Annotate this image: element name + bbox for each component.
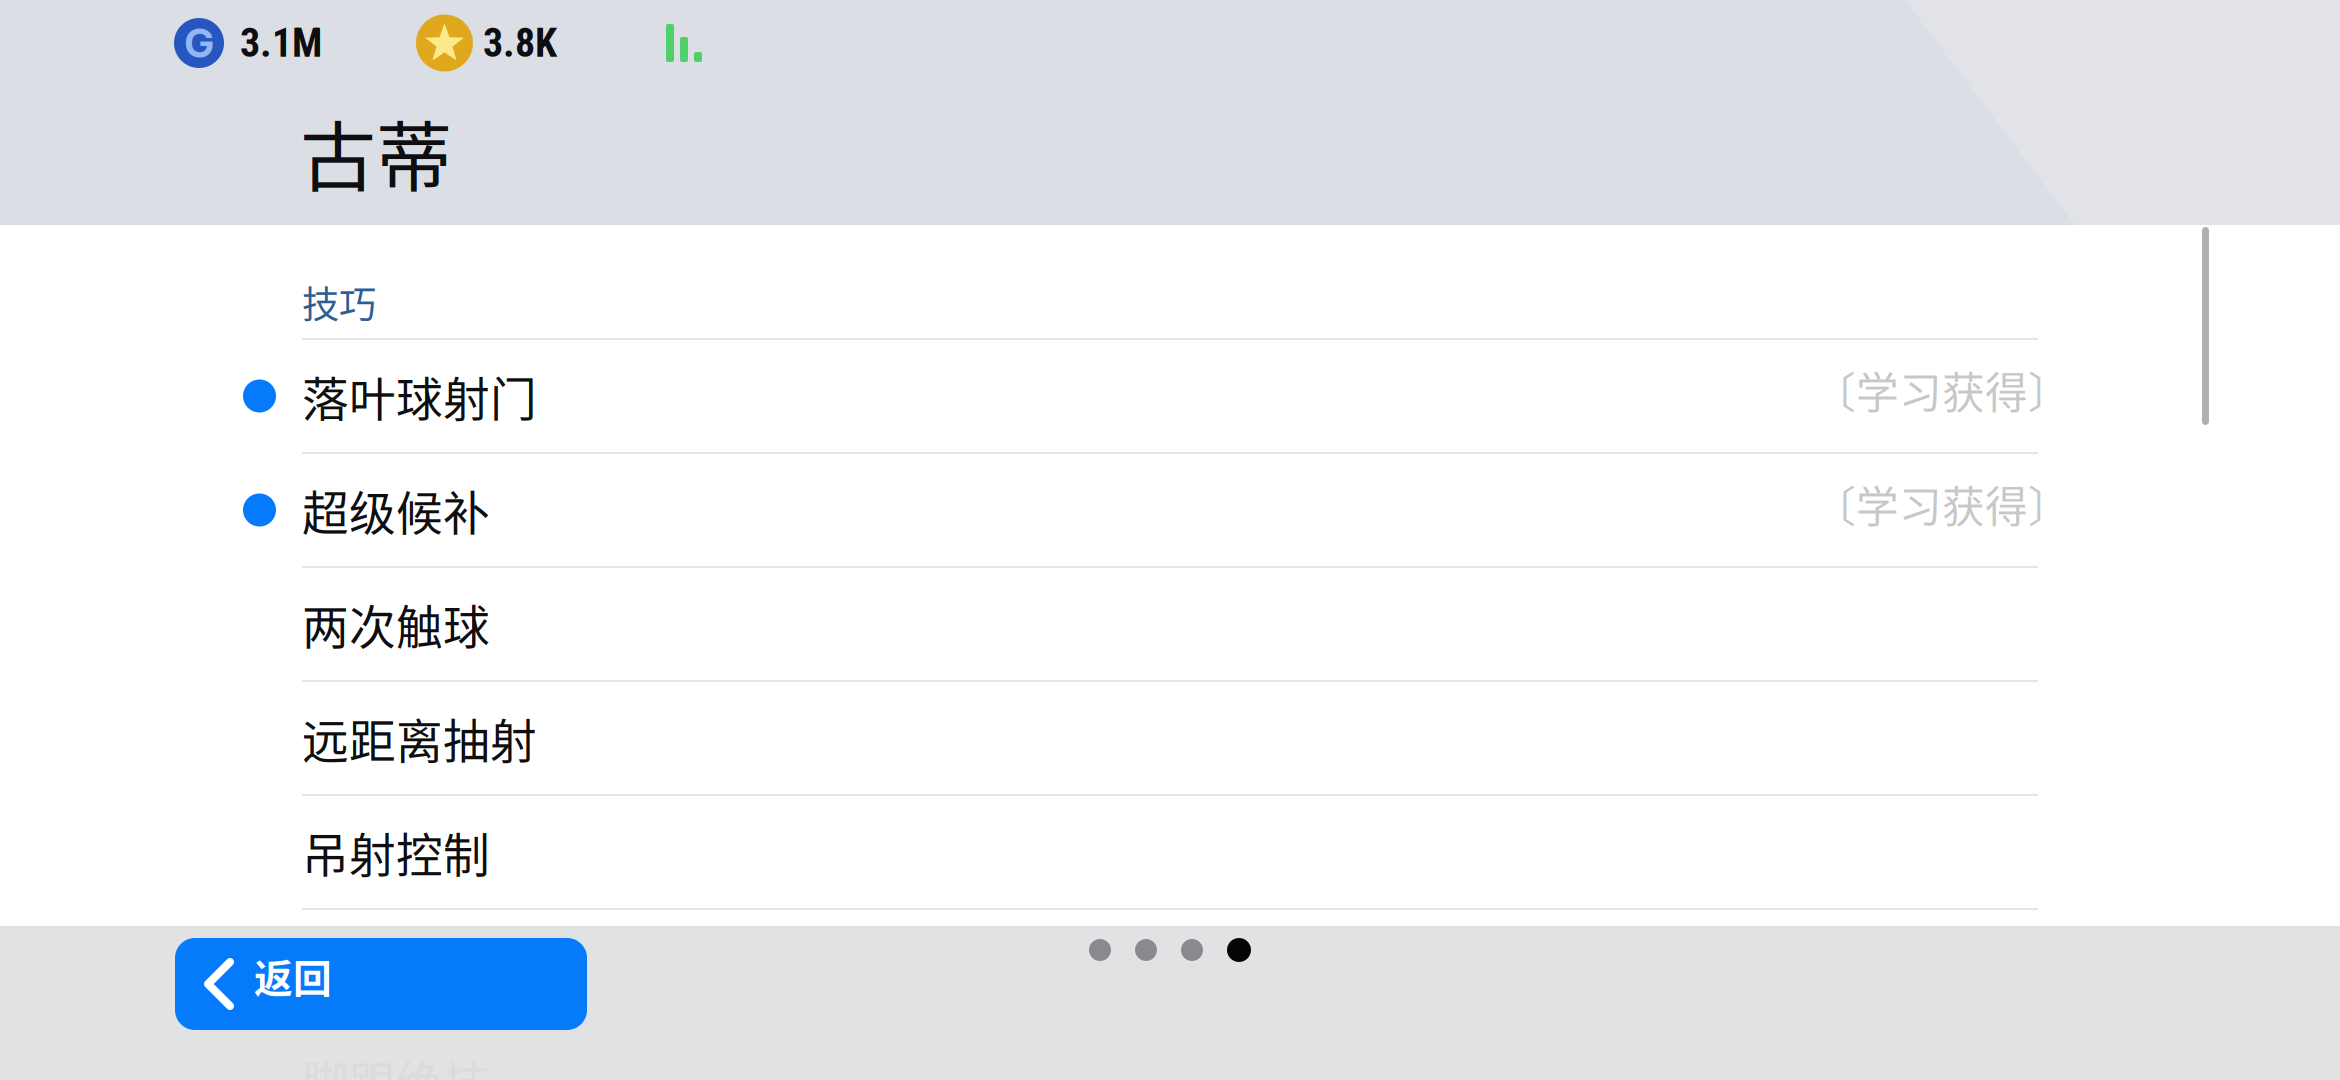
button[interactable]: 两次触球 [0,568,2340,680]
button[interactable]: 远距离抽射 [0,682,2340,794]
button[interactable]: 落叶球射门 [0,340,2340,452]
staticText: 〔学习获得〕 [1813,473,2071,535]
staticText: 〔学习获得〕 [1813,359,2071,421]
staticText: 技巧 [302,275,376,329]
staticText: 两次触球 [302,590,490,658]
staticText: 落叶球射门 [302,362,537,430]
staticText: 吊射控制 [302,818,490,886]
staticText: 返回 [254,948,332,1004]
staticText: 3.1M [240,20,322,66]
staticText: 超级候补 [302,476,490,544]
button[interactable]: 超级候补 [0,454,2340,566]
staticText: G [184,19,213,67]
staticText: 古蒂 [300,97,452,207]
button[interactable]: 返回 [175,938,587,1030]
button[interactable]: 吊射控制 [0,796,2340,908]
staticText: 远距离抽射 [302,704,537,772]
staticText: 3.8K [483,20,557,66]
